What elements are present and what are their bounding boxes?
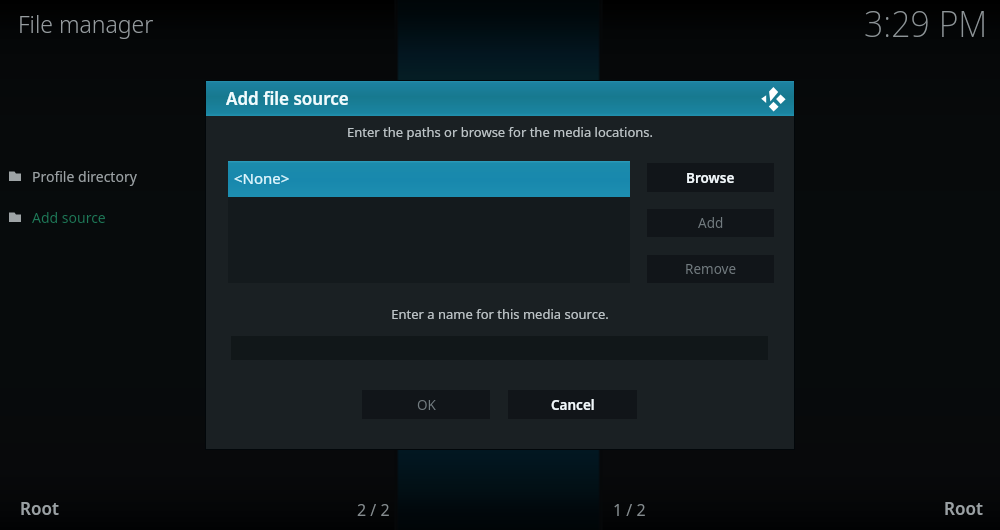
staticText: OK — [417, 396, 436, 414]
staticText: Enter the paths or browse for the media … — [206, 123, 794, 141]
other: Kodi — [755, 87, 786, 112]
staticText: 1 / 2 — [613, 499, 646, 521]
staticText: Remove — [685, 260, 737, 278]
staticText: Add — [698, 214, 724, 232]
button[interactable]: Cancel — [508, 390, 637, 419]
button[interactable]: Profile directory — [0, 160, 190, 192]
staticText: Cancel — [551, 396, 595, 414]
staticText: Add source — [32, 208, 106, 227]
staticText: 3:29 PM — [864, 0, 988, 48]
staticText: Browse — [686, 169, 735, 187]
staticText: <None> — [234, 168, 290, 188]
staticText: File manager — [18, 8, 154, 39]
staticText: Root — [20, 497, 59, 520]
button[interactable]: Remove — [647, 255, 774, 283]
button[interactable]: Add source — [0, 201, 190, 233]
button[interactable]: Add — [647, 209, 774, 237]
staticText: Enter a name for this media source. — [206, 305, 794, 323]
staticText: Root — [944, 497, 983, 520]
button[interactable]: OK — [362, 390, 490, 419]
staticText: Profile directory — [32, 167, 137, 186]
staticText: Add file source — [226, 87, 349, 110]
button[interactable]: <None> — [228, 161, 630, 197]
button[interactable]: Browse — [647, 163, 774, 192]
staticText: 2 / 2 — [357, 499, 390, 521]
